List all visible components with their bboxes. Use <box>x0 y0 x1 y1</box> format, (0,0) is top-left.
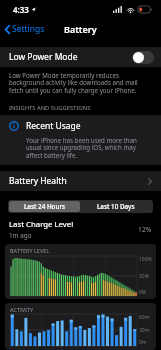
staticText: 0% <box>139 289 147 296</box>
button[interactable]: Last 24 Hours <box>9 201 80 212</box>
staticText: Your iPhone has been used more than usua… <box>26 136 152 160</box>
staticText: Low Power Mode <box>9 51 78 63</box>
staticText: 1m ago <box>9 231 32 240</box>
staticText: Last 10 Days <box>97 202 135 211</box>
staticText: 30m <box>139 327 150 334</box>
button[interactable]: Recent Usage <box>0 115 161 165</box>
staticText: 4:33 <box>13 4 29 15</box>
staticText: Settings <box>12 23 45 35</box>
staticText: Last 24 Hours <box>24 202 66 211</box>
button[interactable]: Low Power Mode toggle <box>132 51 154 64</box>
staticText: Battery <box>64 23 97 35</box>
button[interactable]: Last 10 Days <box>80 201 152 212</box>
staticText: INSIGHTS AND SUGGESTIONS <box>9 104 91 112</box>
button[interactable]: Low Power Mode <box>0 47 161 67</box>
staticText: 12% <box>138 225 152 234</box>
staticText: ACTIVITY <box>10 306 34 313</box>
button[interactable]: Settings <box>0 20 51 38</box>
staticText: Battery Health <box>9 175 67 187</box>
button[interactable]: Battery Health <box>0 171 161 191</box>
staticText: 100% <box>139 256 152 263</box>
staticText: Recent Usage <box>26 120 81 132</box>
staticText: 50% <box>139 273 149 280</box>
staticText: Low Power Mode temporarily reduces backg… <box>9 71 152 95</box>
staticText: Last Charge Level <box>9 219 74 230</box>
staticText: 60m <box>139 314 150 321</box>
staticText: 0m <box>139 339 147 346</box>
staticText: BATTERY LEVEL <box>10 247 50 254</box>
